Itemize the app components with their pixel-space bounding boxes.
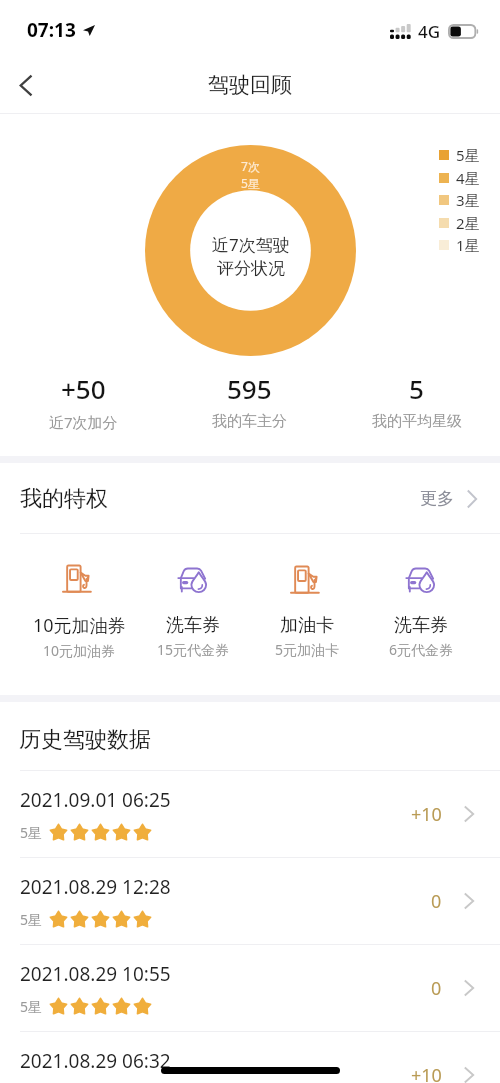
staticText: 2021.08.29 06:32 [20, 1048, 171, 1074]
button[interactable]: 2021.08.29 06:32 [0, 1032, 500, 1083]
staticText: +50 [61, 371, 106, 406]
button[interactable]: Back [4, 64, 48, 108]
staticText: 我的车主分 [212, 412, 287, 431]
staticText: 3星 [456, 190, 480, 210]
staticText: 评分状况 [217, 258, 285, 279]
staticText: 洗车券 [394, 614, 448, 637]
staticText: 2021.08.29 10:55 [20, 961, 171, 987]
staticText: 0 [431, 889, 442, 914]
button[interactable]: 加油卡 [250, 561, 364, 668]
staticText: 加油卡 [280, 614, 334, 637]
staticText: 我的平均星级 [372, 412, 462, 431]
button[interactable]: 2021.09.01 06:25 [0, 771, 500, 857]
staticText: 5星 [20, 910, 43, 929]
button[interactable]: 洗车券 [136, 561, 250, 668]
staticText: 4G [418, 20, 441, 43]
staticText: 10元加油券 [33, 613, 126, 638]
staticText: 驾驶回顾 [208, 72, 292, 98]
staticText: +10 [411, 1063, 442, 1083]
staticText: 15元代金券 [157, 640, 230, 659]
staticText: 洗车券 [166, 614, 220, 637]
staticText: 更多 [420, 488, 454, 509]
staticText: 我的特权 [20, 485, 108, 513]
button[interactable]: 2021.08.29 12:28 [0, 858, 500, 944]
staticText: 5星 [241, 175, 260, 191]
staticText: 5星 [20, 823, 43, 842]
staticText: 10元加油券 [43, 641, 116, 660]
staticText: 近7次驾驶 [212, 233, 290, 256]
staticText: 2021.09.01 06:25 [20, 787, 171, 813]
staticText: 0 [431, 976, 442, 1001]
staticText: 6元代金券 [389, 640, 454, 659]
staticText: 历史驾驶数据 [19, 726, 151, 754]
staticText: 7次 [241, 158, 260, 174]
staticText: 2021.08.29 12:28 [20, 874, 171, 900]
button[interactable]: 更多 [420, 482, 477, 515]
staticText: 4星 [456, 168, 480, 188]
staticText: 近7次加分 [49, 412, 118, 432]
staticText: 2星 [456, 213, 480, 233]
staticText: 5元加油卡 [275, 640, 340, 659]
button[interactable]: 洗车券 [364, 561, 478, 668]
staticText: 5星 [456, 145, 480, 165]
staticText: 595 [227, 371, 272, 406]
button[interactable]: 2021.08.29 10:55 [0, 945, 500, 1031]
staticText: 5星 [20, 997, 43, 1016]
staticText: 07:13 [27, 17, 76, 43]
staticText: 1星 [456, 235, 480, 255]
staticText: 5 [409, 371, 424, 406]
button[interactable]: 10元加油券 [22, 560, 136, 669]
staticText: +10 [411, 802, 442, 827]
